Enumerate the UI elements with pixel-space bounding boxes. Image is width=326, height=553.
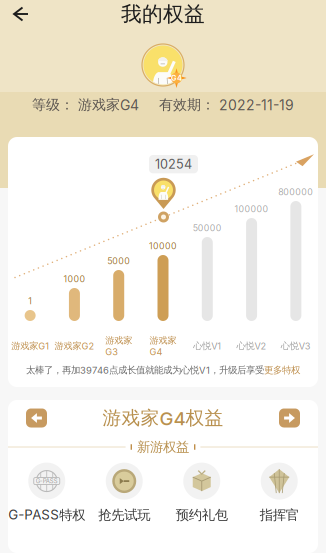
staticText: G-PASS特权 [8, 507, 85, 523]
staticText: 游戏家 G3 [105, 335, 132, 357]
staticText: 指挥官 [260, 507, 299, 523]
staticText: 10000 [149, 241, 177, 251]
staticText: 50000 [193, 223, 222, 233]
button[interactable]: 预约礼包 [163, 460, 240, 526]
staticText: 10254 [155, 156, 192, 172]
staticText: 太棒了，再加39746点成长值就能成为心悦V1，升级后享受 [26, 364, 264, 376]
staticText: 游戏家 G4 [149, 335, 176, 357]
staticText: 我的权益 [121, 1, 205, 27]
staticText: 100000 [235, 204, 269, 214]
staticText: 抢先试玩 [98, 507, 150, 523]
staticText: 等级： 游戏家G4 [32, 96, 139, 114]
staticText: 新游权益 [137, 439, 189, 455]
staticText: 5000 [107, 256, 130, 266]
staticText: 有效期： 2022-11-19 [159, 96, 294, 114]
button[interactable]: Next tier [279, 408, 300, 427]
staticText: 预约礼包 [176, 507, 228, 523]
staticText: 游戏家G1 [11, 340, 49, 352]
staticText: 1000 [63, 274, 85, 284]
button[interactable]: Previous tier [26, 408, 47, 427]
staticText: 心悦V2 [237, 340, 267, 352]
staticText: 更多特权 [264, 364, 300, 376]
button[interactable]: 指挥官 [240, 460, 318, 526]
staticText: 800000 [278, 187, 313, 197]
staticText: 心悦V3 [281, 340, 311, 352]
staticText: 游戏家G2 [54, 340, 94, 352]
button[interactable]: 抢先试玩 [85, 460, 163, 526]
button[interactable]: G-PASS [8, 460, 85, 526]
staticText: G-PASS [36, 477, 58, 485]
staticText: 1 [28, 296, 32, 306]
staticText: 心悦V1 [193, 340, 221, 352]
staticText: G4 [171, 74, 182, 82]
staticText: 游戏家G4权益 [102, 406, 223, 430]
button[interactable]: Back [0, 0, 39, 28]
